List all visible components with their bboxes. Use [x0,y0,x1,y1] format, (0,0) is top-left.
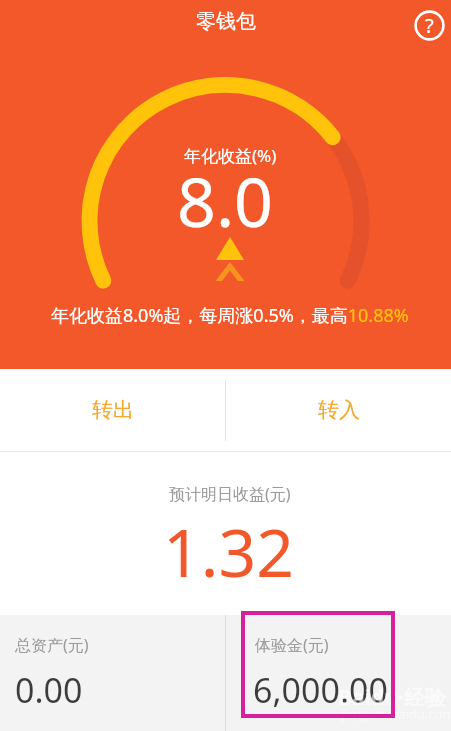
button[interactable]: 转入 [226,369,451,451]
staticText: 总资产(元) [15,634,89,656]
staticText: 零钱包 [196,9,256,34]
staticText: 8.0 [177,154,274,247]
staticText: jingyan.baidu.com [342,705,451,723]
button[interactable]: ? [414,10,445,41]
staticText: 年化收益(%) [184,144,277,167]
staticText: ? [425,12,434,39]
staticText: Baidu·经验 [338,683,446,712]
staticText: 1.32 [163,506,294,596]
staticText: 0.00 [15,667,83,713]
button[interactable]: 总资产(元) [0,615,225,731]
staticText: 预计明日收益(元) [169,483,291,505]
button[interactable]: 体验金(元) [226,615,451,731]
button[interactable]: 转出 [0,369,225,451]
staticText: 6,000.00 [253,667,388,713]
staticText: 年化收益8.0%起，每周涨0.5%，最高10.88% [51,303,409,328]
staticText: 转入 [318,397,360,423]
staticText: 转出 [92,397,134,423]
staticText: 体验金(元) [255,634,329,656]
